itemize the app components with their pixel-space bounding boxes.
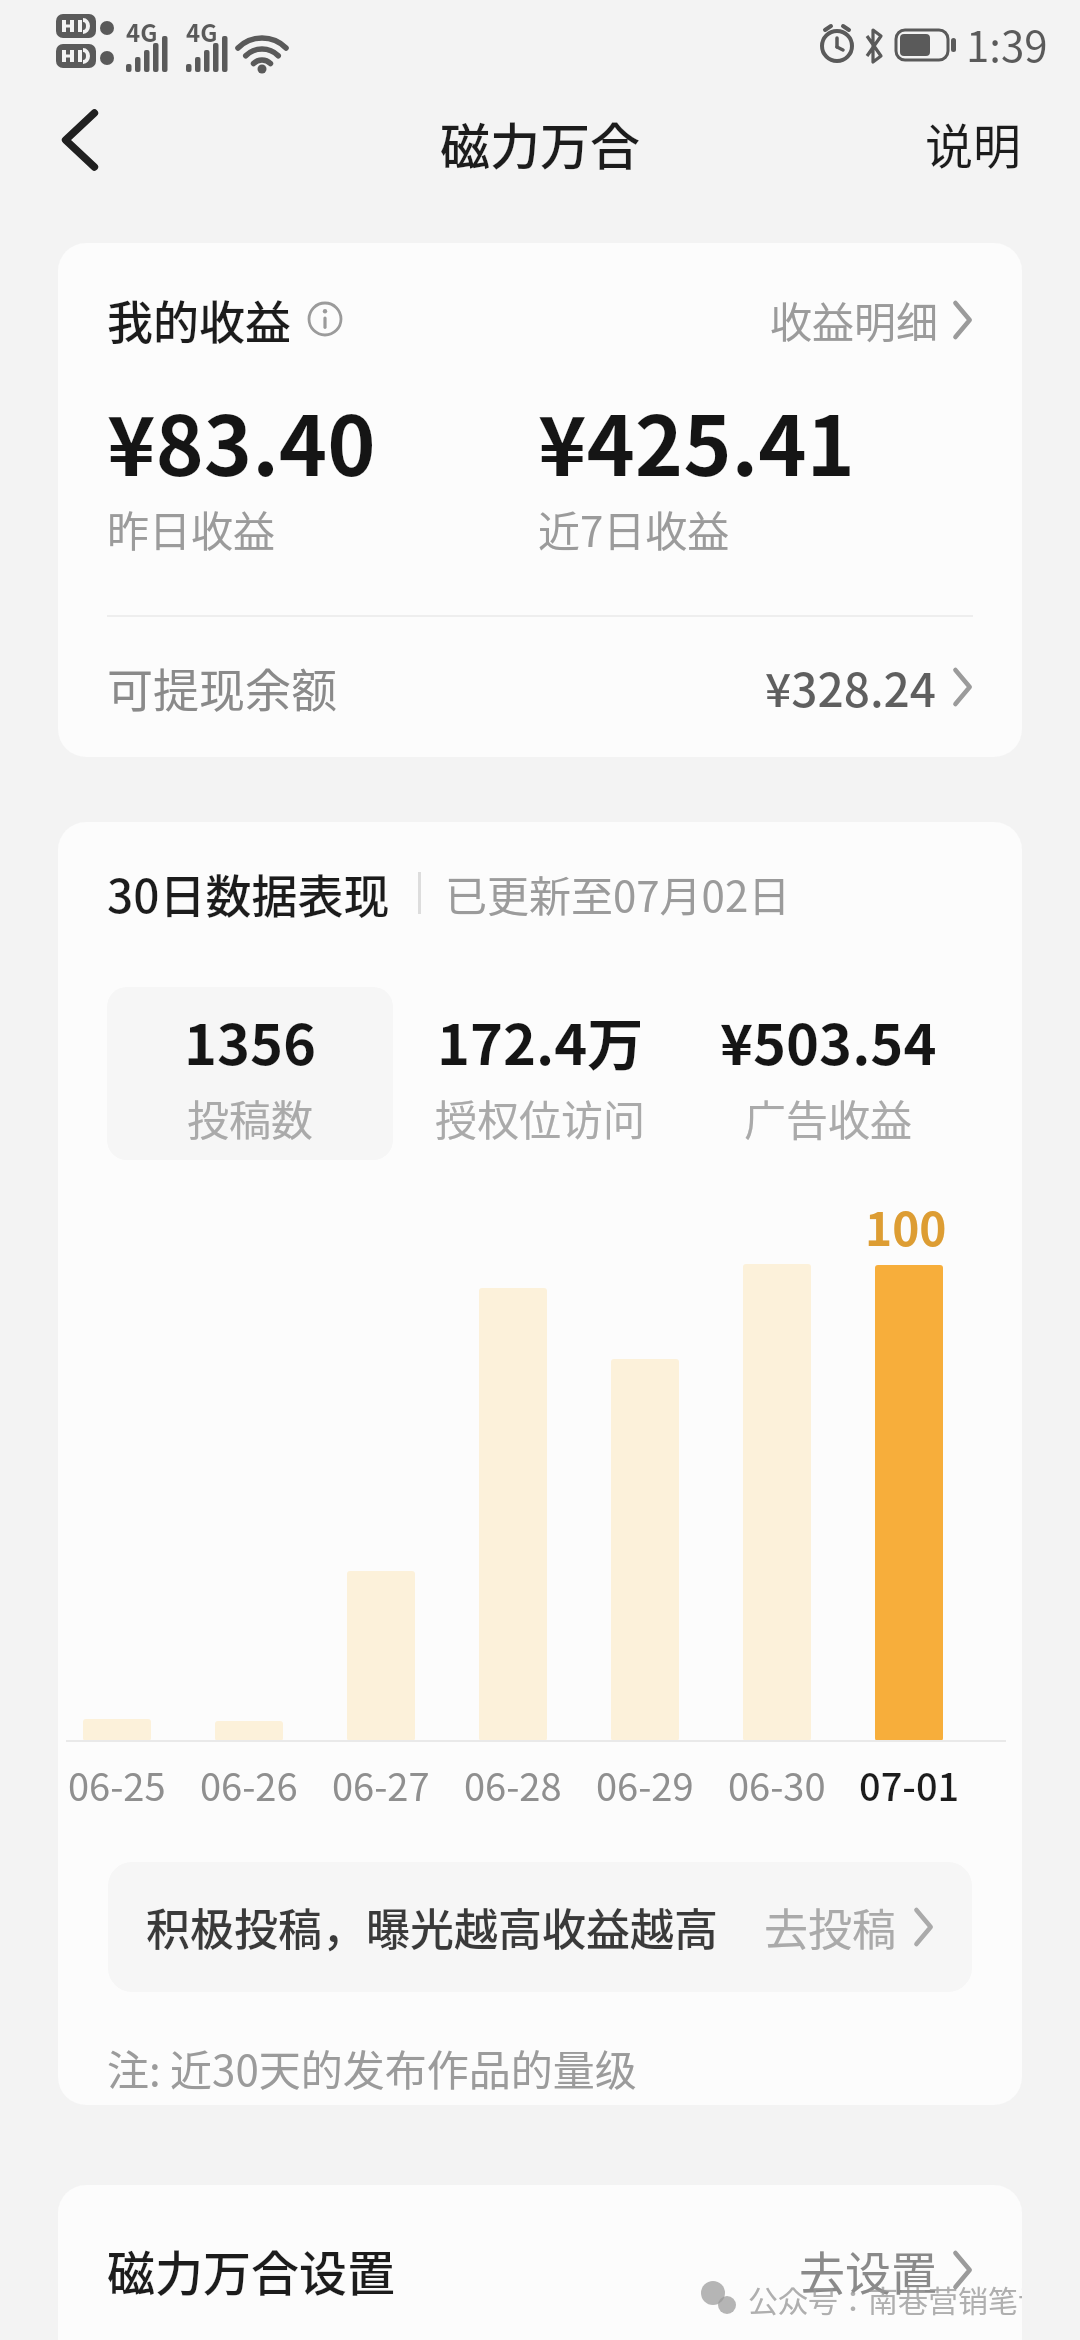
- button[interactable]: 收益明细: [770, 289, 973, 350]
- staticText: 积极投稿，曝光越高收益越高: [146, 1895, 718, 1959]
- staticText: 公众号：南巷营销笔记: [748, 2277, 1022, 2320]
- staticText: 06-25: [68, 1757, 166, 1812]
- staticText: 172.4万: [437, 1000, 644, 1081]
- staticText: ¥503.54: [720, 1000, 937, 1081]
- staticText: 30日数据表现: [107, 860, 390, 926]
- staticText: 06-30: [728, 1757, 826, 1812]
- staticText: 投稿数: [187, 1087, 314, 1148]
- staticText: 我的收益: [107, 286, 291, 353]
- staticText: 06-26: [200, 1757, 298, 1812]
- staticText: 06-27: [332, 1757, 430, 1812]
- staticText: 07-01: [859, 1757, 960, 1812]
- staticText: 授权位访问: [435, 1087, 646, 1148]
- staticText: ¥83.40: [107, 381, 376, 500]
- staticText: 1356: [184, 1000, 317, 1081]
- staticText: 去设置: [799, 2237, 937, 2304]
- staticText: 100: [865, 1193, 947, 1260]
- staticText: 4G: [126, 14, 158, 49]
- staticText: 注: 近30天的发布作品的量级: [107, 2037, 637, 2098]
- staticText: 1:39: [966, 13, 1048, 74]
- staticText: 广告收益: [744, 1087, 913, 1148]
- staticText: 06-28: [464, 1757, 562, 1812]
- staticText: 已更新至07月02日: [445, 863, 791, 924]
- staticText: 昨日收益: [107, 498, 276, 559]
- staticText: 去投稿: [764, 1895, 896, 1959]
- button[interactable]: 说明: [925, 108, 1022, 178]
- staticText: 近7日收益: [538, 498, 730, 559]
- button[interactable]: 积极投稿，曝光越高收益越高: [146, 1862, 934, 1992]
- staticText: 4G: [186, 14, 218, 49]
- staticText: 可提现余额: [107, 654, 337, 721]
- staticText: 说明: [925, 108, 1022, 178]
- button[interactable]: 可提现余额: [107, 647, 973, 727]
- staticText: ¥425.41: [538, 381, 855, 500]
- button[interactable]: 磁力万合设置: [107, 2230, 973, 2310]
- button[interactable]: [40, 100, 120, 180]
- staticText: 06-29: [596, 1757, 694, 1812]
- staticText: ¥328.24: [765, 654, 937, 721]
- staticText: 磁力万合: [440, 107, 640, 179]
- staticText: 收益明细: [770, 289, 939, 350]
- staticText: 磁力万合设置: [107, 2235, 396, 2305]
